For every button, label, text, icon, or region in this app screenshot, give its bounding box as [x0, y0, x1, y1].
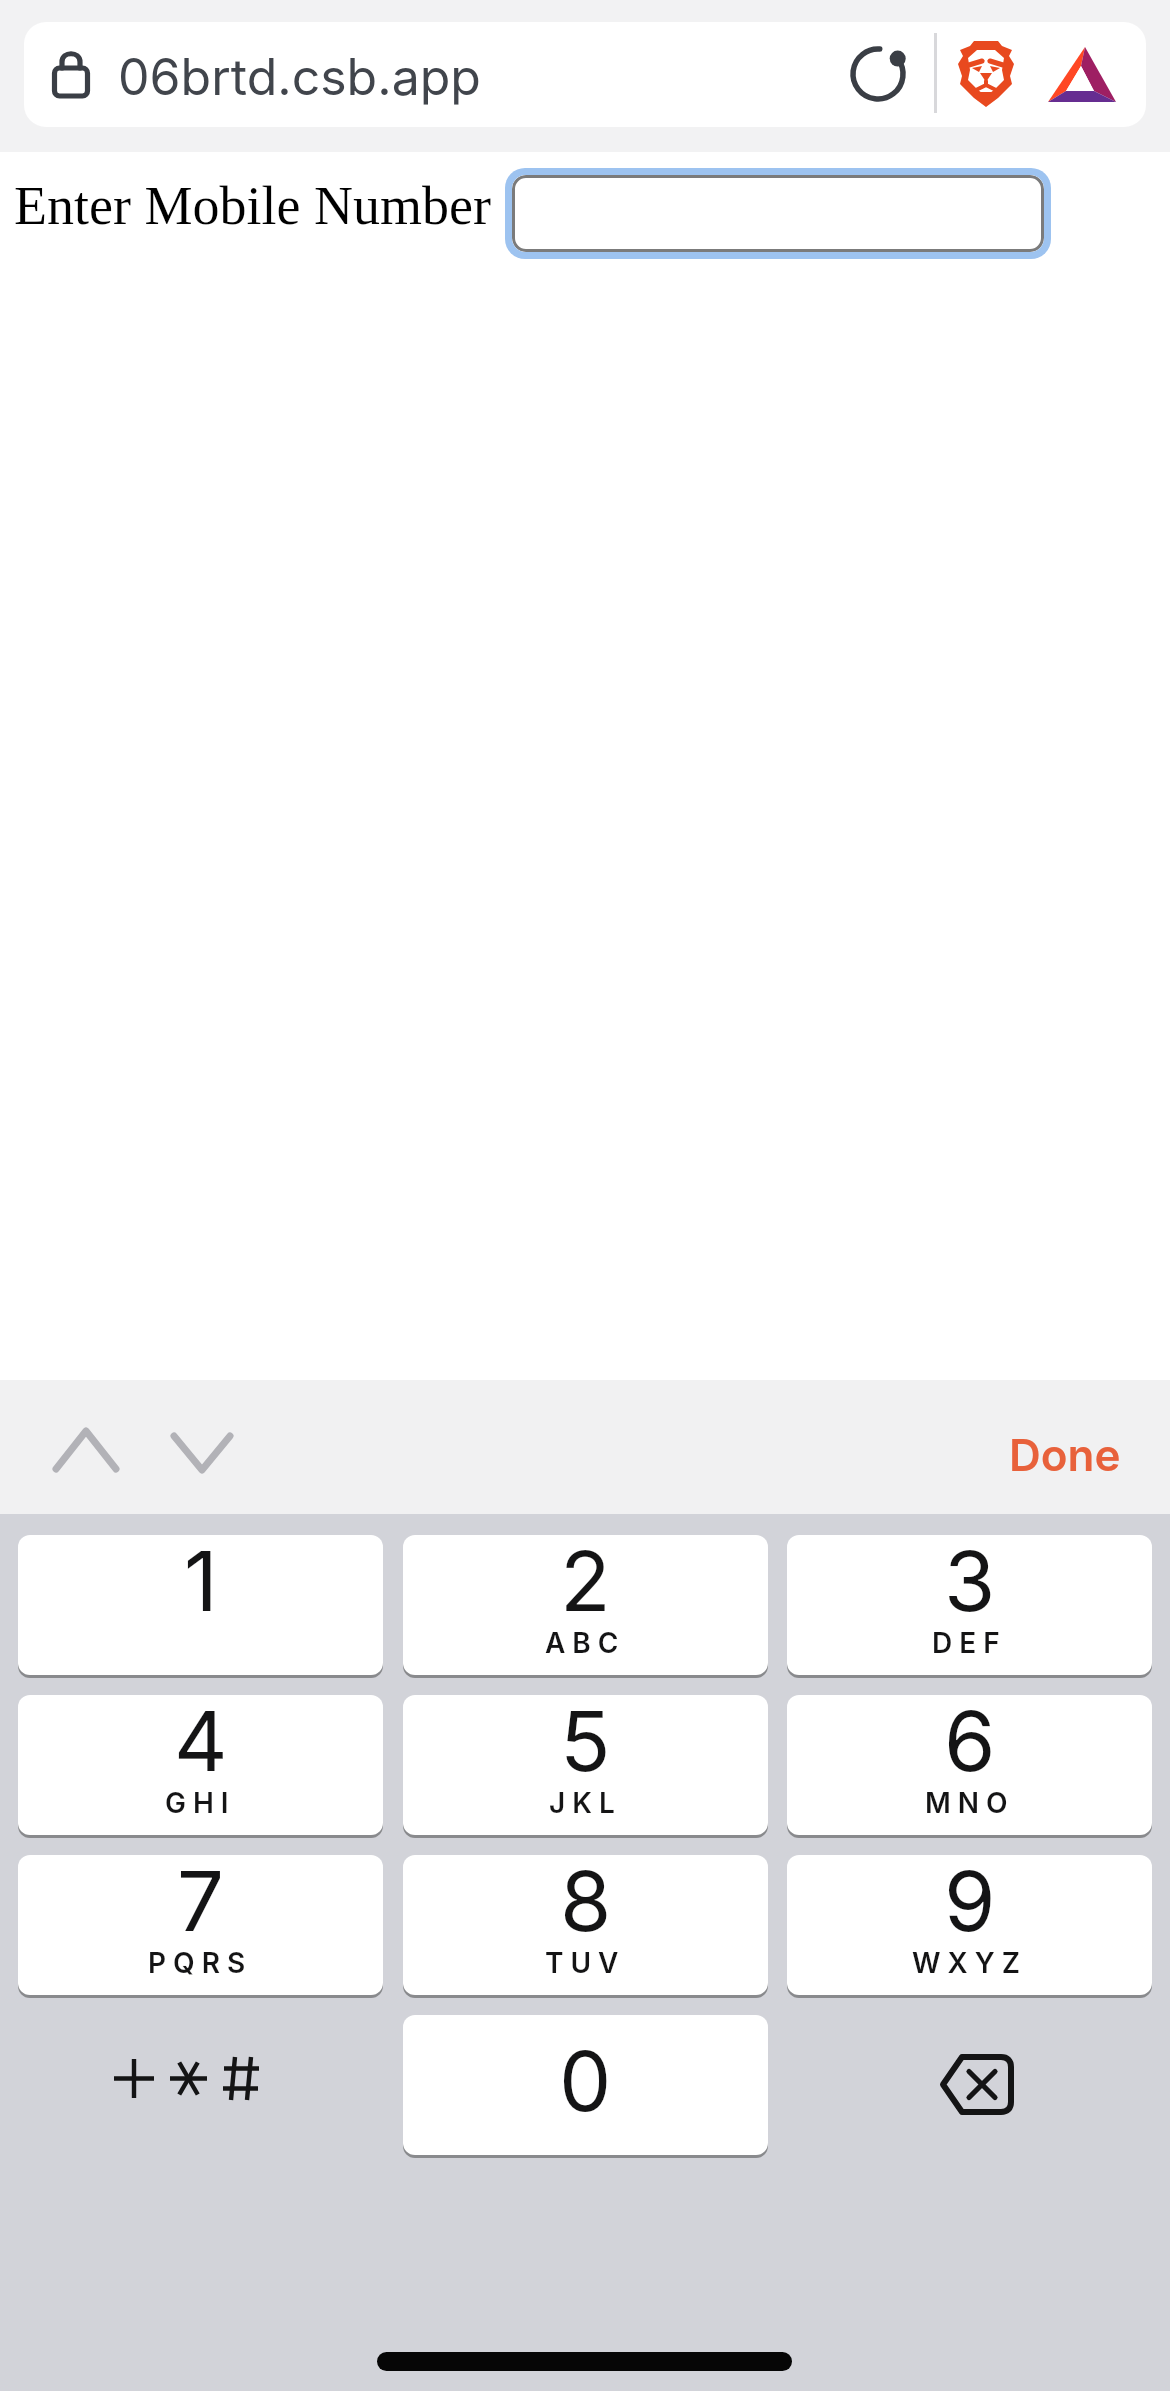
staticText: 5 [560, 1695, 611, 1791]
button[interactable]: 5 [403, 1695, 768, 1835]
button[interactable] [505, 168, 1051, 259]
staticText: DEF [932, 1626, 1007, 1660]
staticText: MNO [925, 1786, 1015, 1820]
staticText: 7 [177, 1855, 224, 1951]
staticText: 2 [560, 1535, 611, 1631]
staticText: ABC [545, 1626, 626, 1660]
staticText: 8 [560, 1855, 612, 1951]
staticText: Enter Mobile Number [14, 176, 491, 236]
button[interactable]: Done [1009, 1428, 1121, 1481]
staticText: 3 [944, 1535, 996, 1631]
button[interactable] [54, 1429, 122, 1473]
staticText: GHI [165, 1786, 236, 1820]
button[interactable]: 0 [403, 2015, 768, 2155]
button[interactable] [1046, 45, 1118, 103]
button[interactable]: 3 [787, 1535, 1152, 1675]
button[interactable]: 9 [787, 1855, 1152, 1995]
button[interactable] [940, 2054, 1014, 2116]
staticText: WXYZ [912, 1946, 1027, 1980]
button[interactable]: 06brtd.csb.app [24, 22, 1146, 127]
button[interactable]: 1 [18, 1535, 383, 1675]
staticText: TUV [545, 1946, 626, 1980]
staticText: 0 [559, 2031, 612, 2131]
staticText: 4 [174, 1695, 228, 1791]
button[interactable]: 4 [18, 1695, 383, 1835]
button[interactable]: 2 [403, 1535, 768, 1675]
staticText: PQRS [148, 1946, 253, 1980]
button[interactable] [110, 2052, 270, 2108]
staticText: JKL [549, 1786, 622, 1820]
staticText: 1 [184, 1535, 218, 1631]
staticText: 06brtd.csb.app [118, 47, 481, 107]
staticText: 9 [944, 1855, 996, 1951]
button[interactable] [956, 38, 1016, 108]
button[interactable]: 8 [403, 1855, 768, 1995]
button[interactable]: 7 [18, 1855, 383, 1995]
staticText: 6 [944, 1695, 996, 1791]
staticText: Done [1009, 1428, 1121, 1481]
button[interactable]: 6 [787, 1695, 1152, 1835]
button[interactable] [172, 1434, 234, 1474]
button[interactable] [848, 43, 908, 103]
